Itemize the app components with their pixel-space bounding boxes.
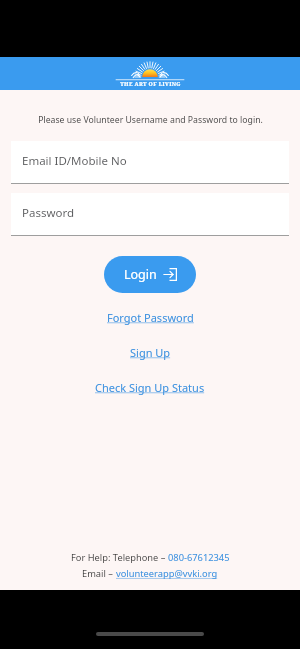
staticText: For Help: Telephone – — [71, 551, 168, 564]
button[interactable]: Login — [104, 256, 196, 293]
button[interactable]: Sign Up — [130, 345, 171, 360]
staticText: Sign Up — [130, 345, 171, 360]
button[interactable]: Password — [11, 193, 289, 236]
staticText: Email ID/Mobile No — [22, 153, 127, 169]
button[interactable]: Check Sign Up Status — [95, 380, 205, 395]
button[interactable]: volunteerapp@vvki.org — [116, 567, 218, 580]
button[interactable]: 080-67612345 — [168, 551, 230, 564]
staticText: Password — [22, 205, 75, 221]
staticText: Login — [124, 266, 157, 283]
button[interactable]: Forgot Password — [107, 310, 194, 325]
staticText: THE ART OF LIVING — [120, 80, 181, 87]
other: Login — [164, 268, 177, 281]
staticText: Forgot Password — [107, 310, 194, 325]
button[interactable]: Email ID/Mobile No — [11, 141, 289, 184]
staticText: 080-67612345 — [168, 551, 230, 564]
staticText: Check Sign Up Status — [95, 380, 205, 395]
staticText: volunteerapp@vvki.org — [116, 567, 218, 580]
staticText: Please use Volunteer Username and Passwo… — [38, 114, 263, 126]
staticText: Email – — [82, 567, 116, 580]
